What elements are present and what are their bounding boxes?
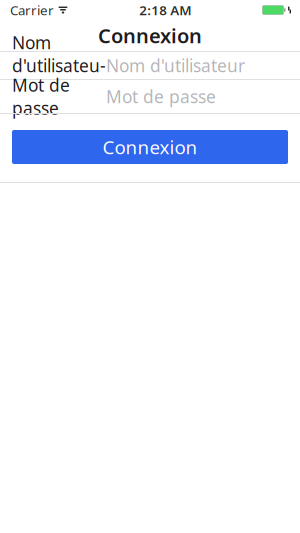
- staticText: 2:18 AM: [139, 1, 191, 19]
- staticText: Nom d'utilisateur: [106, 54, 245, 77]
- staticText: Connexion: [98, 22, 202, 49]
- staticText: Connexion: [102, 135, 197, 159]
- staticText: Mot de passe: [106, 85, 216, 108]
- staticText: Carrier: [10, 1, 54, 19]
- staticText: Mot de passe: [12, 73, 70, 119]
- staticText: Nom d'utilisateur: [12, 31, 106, 100]
- button[interactable]: Connexion: [12, 130, 288, 164]
